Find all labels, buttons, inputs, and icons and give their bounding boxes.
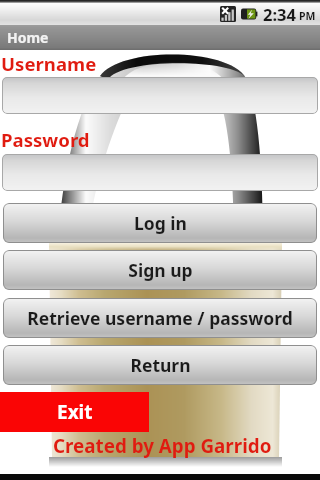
button[interactable]: Return [3, 345, 317, 385]
staticText: Return [130, 353, 191, 377]
staticText: Password [1, 127, 90, 152]
staticText: Exit [57, 399, 93, 425]
staticText: Sign up [128, 258, 193, 282]
button[interactable]: Sign up [3, 250, 317, 290]
staticText: Created by App Garrido [53, 433, 272, 459]
button[interactable]: Home [0, 25, 320, 50]
button[interactable]: Retrieve username / password [3, 298, 317, 338]
other: Mobile signal [218, 4, 238, 24]
staticText: Retrieve username / password [27, 306, 293, 330]
button[interactable]: Password field [2, 154, 318, 191]
staticText: PM [299, 9, 316, 23]
other: Battery charging [239, 4, 259, 24]
button[interactable]: Log in [3, 203, 317, 243]
staticText: Log in [134, 211, 187, 235]
staticText: Home [7, 28, 49, 47]
button[interactable]: Exit [0, 392, 149, 432]
button[interactable]: Username field [2, 77, 318, 114]
staticText: 2:34 [263, 3, 296, 25]
staticText: Username [1, 51, 97, 76]
